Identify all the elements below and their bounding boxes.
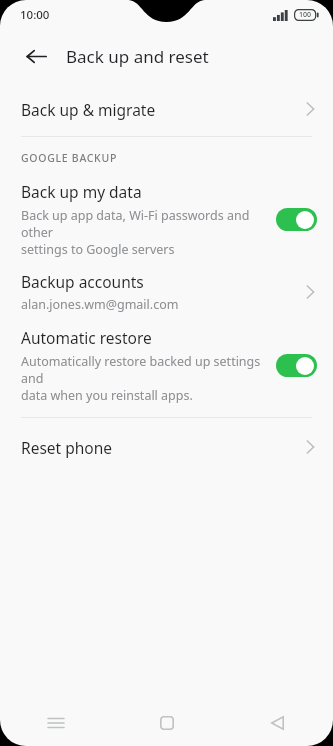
staticText: Back up app data, Wi-Fi passwords and ot… (21, 207, 268, 258)
staticText: alan.jones.wm@gmail.com (21, 296, 179, 313)
button[interactable]: Home (111, 700, 222, 746)
staticText: 10:00 (20, 7, 50, 23)
button[interactable]: Back (16, 36, 56, 76)
staticText: Back up my data (21, 181, 142, 202)
button[interactable]: Back up & migrate (0, 82, 333, 136)
button[interactable]: Back (222, 700, 333, 746)
button[interactable]: Toggle on (276, 354, 317, 377)
button[interactable]: Recent apps (0, 700, 111, 746)
button[interactable]: Automatic restore (0, 325, 333, 405)
staticText: Automatically restore backed up settings… (21, 353, 268, 404)
button[interactable]: Toggle on (276, 208, 317, 231)
staticText: 100 (299, 10, 312, 20)
button[interactable]: Back up my data (0, 179, 333, 259)
button[interactable]: Backup accounts (0, 259, 333, 325)
staticText: Reset phone (21, 437, 112, 458)
staticText: GOOGLE BACKUP (21, 151, 118, 165)
staticText: Automatic restore (21, 327, 152, 348)
staticText: Backup accounts (21, 271, 144, 292)
staticText: Back up & migrate (21, 99, 156, 120)
staticText: Back up and reset (66, 45, 209, 68)
button[interactable]: Reset phone (0, 418, 333, 476)
